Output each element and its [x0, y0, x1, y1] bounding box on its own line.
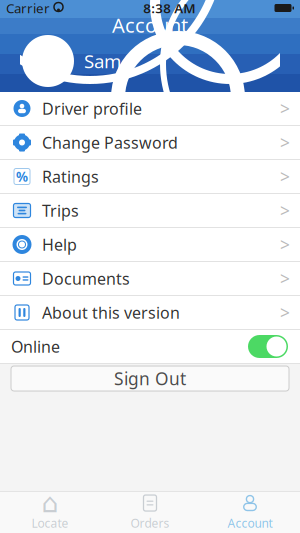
staticText: Account [227, 515, 272, 531]
button[interactable]: Trips [0, 194, 300, 228]
staticText: Sam [84, 49, 121, 73]
staticText: Trips [42, 200, 79, 221]
staticText: ⌂ [41, 488, 58, 518]
staticText: % [16, 168, 28, 185]
staticText: 8:38 AM [143, 0, 195, 17]
button[interactable]: Account [200, 492, 300, 533]
button[interactable]: ⌂ [0, 492, 100, 533]
staticText: Documents [42, 268, 130, 289]
staticText: > [280, 199, 290, 222]
staticText: About this version [42, 302, 180, 323]
staticText: Ratings [42, 166, 99, 187]
staticText: Orders [130, 515, 169, 531]
button[interactable]: Online [246, 333, 290, 360]
staticText: > [280, 301, 290, 324]
button[interactable]: Change Password [0, 126, 300, 160]
staticText: > [280, 267, 290, 290]
button[interactable]: Orders [100, 492, 200, 533]
button[interactable]: Help [0, 228, 300, 262]
staticText: > [280, 165, 290, 188]
staticText: Driver profile [42, 98, 142, 119]
button[interactable]: Driver profile [0, 92, 300, 126]
staticText: Online [11, 336, 60, 357]
staticText: > [280, 131, 290, 154]
staticText: Change Password [42, 132, 178, 153]
staticText: > [280, 97, 290, 120]
staticText: Account [112, 12, 188, 38]
staticText: Locate [31, 515, 68, 531]
staticText: Sign Out [114, 367, 186, 390]
button[interactable]: Documents [0, 262, 300, 296]
staticText: Carrier [6, 0, 50, 17]
staticText: > [280, 233, 290, 256]
staticText: Help [42, 234, 77, 255]
button[interactable]: % [0, 160, 300, 194]
button[interactable]: Sign Out [11, 366, 289, 391]
button[interactable]: About this version [0, 296, 300, 330]
